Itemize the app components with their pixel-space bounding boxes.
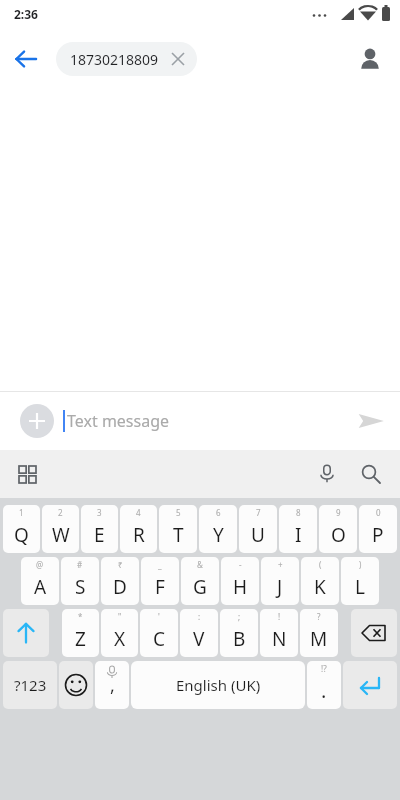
staticText: Text message	[67, 410, 170, 432]
staticText: G	[193, 574, 207, 600]
button[interactable]: !	[260, 609, 298, 657]
staticText: _	[158, 559, 162, 570]
staticText: D	[113, 574, 127, 600]
staticText: Q	[14, 522, 29, 548]
staticText: Y	[213, 522, 224, 548]
staticText: ;	[238, 611, 241, 622]
staticText: "	[118, 611, 122, 622]
staticText: .	[321, 677, 327, 704]
staticText: T	[173, 522, 184, 548]
button[interactable]: Backspace	[351, 609, 397, 657]
staticText: 2:36	[14, 6, 38, 22]
staticText: R	[133, 522, 145, 548]
button[interactable]: @	[21, 557, 59, 605]
staticText: 1	[19, 507, 24, 518]
staticText: W	[52, 522, 70, 548]
button[interactable]: Clipboard	[8, 455, 46, 493]
staticText: E	[94, 522, 105, 548]
staticText: F	[155, 574, 165, 600]
button[interactable]: 0	[359, 505, 397, 553]
button[interactable]: '	[140, 609, 178, 657]
button[interactable]: Enter	[343, 661, 397, 709]
button[interactable]: 3	[81, 505, 118, 553]
button[interactable]: Send	[348, 398, 394, 444]
button[interactable]: 9	[319, 505, 357, 553]
staticText: '	[158, 611, 160, 622]
button[interactable]: Back	[4, 37, 48, 81]
staticText: +	[278, 559, 283, 570]
button[interactable]: !?	[307, 661, 341, 709]
staticText: A	[34, 574, 47, 600]
staticText: 18730218809	[70, 50, 159, 69]
button[interactable]: English (UK)	[131, 661, 305, 709]
staticText: N	[272, 626, 287, 652]
staticText: (	[319, 559, 322, 570]
button[interactable]: 1	[3, 505, 40, 553]
button[interactable]: 2	[42, 505, 79, 553]
staticText: J	[277, 574, 283, 600]
staticText: P	[372, 522, 384, 548]
button[interactable]: #	[61, 557, 99, 605]
staticText: M	[310, 626, 328, 652]
staticText: I	[295, 522, 302, 548]
staticText: 9	[336, 507, 341, 518]
staticText: 6	[216, 507, 221, 518]
button[interactable]: ?	[300, 609, 338, 657]
button[interactable]: Contact details	[348, 37, 392, 81]
staticText: K	[314, 574, 326, 600]
button[interactable]: &	[181, 557, 219, 605]
button[interactable]: 7	[239, 505, 277, 553]
staticText: @	[36, 559, 44, 570]
staticText: L	[355, 574, 365, 600]
button[interactable]: ?123	[3, 661, 57, 709]
button[interactable]: (	[301, 557, 339, 605]
staticText: &	[197, 559, 203, 570]
button[interactable]: Comma	[95, 661, 129, 709]
staticText: C	[153, 626, 166, 652]
button[interactable]: 6	[199, 505, 237, 553]
button[interactable]: 18730218809	[56, 42, 197, 76]
staticText: U	[251, 522, 265, 548]
button[interactable]: Remove	[170, 51, 186, 67]
staticText: :	[198, 611, 201, 622]
staticText: !?	[321, 663, 327, 674]
staticText: Z	[75, 626, 86, 652]
button[interactable]: 5	[159, 505, 197, 553]
button[interactable]: 8	[279, 505, 317, 553]
button[interactable]: Add attachment	[20, 404, 54, 438]
staticText: ?123	[14, 675, 47, 695]
staticText: #	[77, 559, 83, 570]
button[interactable]: _	[141, 557, 179, 605]
button[interactable]: -	[221, 557, 259, 605]
staticText: ₹	[118, 559, 123, 570]
button[interactable]: *	[62, 609, 99, 657]
staticText: !	[278, 611, 281, 622]
button[interactable]: :	[180, 609, 218, 657]
button[interactable]: 4	[120, 505, 157, 553]
staticText: 5	[176, 507, 181, 518]
staticText: *	[78, 611, 83, 622]
staticText: X	[114, 626, 126, 652]
button[interactable]: Emoji	[59, 661, 93, 709]
staticText: 2	[58, 507, 63, 518]
button[interactable]: Shift	[3, 609, 49, 657]
staticText: S	[75, 574, 86, 600]
staticText: 3	[97, 507, 102, 518]
staticText: O	[331, 522, 346, 548]
button[interactable]: ₹	[101, 557, 139, 605]
button[interactable]: ;	[220, 609, 258, 657]
button[interactable]: Search	[352, 455, 390, 493]
staticText: 7	[256, 507, 261, 518]
button[interactable]: +	[261, 557, 299, 605]
button[interactable]: "	[101, 609, 138, 657]
staticText: B	[233, 626, 246, 652]
button[interactable]: Voice input	[308, 455, 346, 493]
staticText: H	[233, 574, 248, 600]
button[interactable]: )	[341, 557, 379, 605]
staticText: -	[239, 559, 242, 570]
staticText: 0	[376, 507, 381, 518]
staticText: )	[359, 559, 362, 570]
staticText: 8	[296, 507, 301, 518]
staticText: 4	[136, 507, 141, 518]
staticText: ,	[110, 673, 115, 698]
